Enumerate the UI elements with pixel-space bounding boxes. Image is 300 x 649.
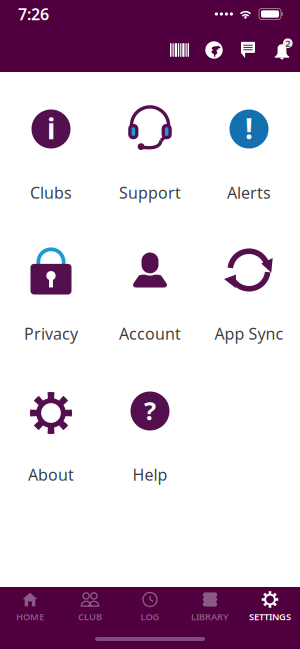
staticText: Help bbox=[132, 464, 167, 485]
staticText: 2 bbox=[285, 37, 290, 49]
staticText: Account bbox=[119, 323, 181, 344]
staticText: Clubs bbox=[30, 182, 72, 203]
staticText: About bbox=[28, 464, 74, 485]
button[interactable]: SETTINGS bbox=[240, 587, 300, 627]
button[interactable]: LOG bbox=[120, 587, 180, 627]
button[interactable]: i bbox=[1, 104, 100, 245]
staticText: App Sync bbox=[214, 323, 283, 344]
button[interactable]: Scan barcode bbox=[162, 35, 197, 65]
staticText: Support bbox=[119, 182, 181, 203]
staticText: ? bbox=[144, 394, 156, 427]
button[interactable]: ? bbox=[100, 386, 199, 527]
button[interactable]: Region bbox=[197, 35, 231, 65]
staticText: LIBRARY bbox=[191, 610, 229, 623]
button[interactable]: LIBRARY bbox=[180, 587, 240, 627]
staticText: CLUB bbox=[78, 610, 102, 623]
button[interactable]: Notifications, 2 new bbox=[265, 35, 299, 65]
button[interactable]: CLUB bbox=[60, 587, 120, 627]
staticText: Alerts bbox=[227, 182, 271, 203]
staticText: LOG bbox=[140, 610, 159, 623]
staticText: SETTINGS bbox=[249, 610, 291, 623]
button[interactable]: App Sync bbox=[199, 245, 298, 386]
button[interactable]: ! bbox=[199, 104, 298, 245]
staticText: HOME bbox=[16, 610, 44, 623]
staticText: 7:26 bbox=[18, 3, 49, 25]
button[interactable]: Privacy bbox=[1, 245, 100, 386]
button[interactable]: Support bbox=[100, 104, 199, 245]
staticText: Privacy bbox=[24, 323, 78, 344]
button[interactable]: About bbox=[1, 386, 100, 527]
button[interactable]: Account bbox=[100, 245, 199, 386]
button[interactable]: Messages bbox=[231, 35, 265, 65]
staticText: i bbox=[47, 110, 55, 147]
button[interactable]: HOME bbox=[0, 587, 60, 627]
staticText: ! bbox=[245, 110, 253, 147]
